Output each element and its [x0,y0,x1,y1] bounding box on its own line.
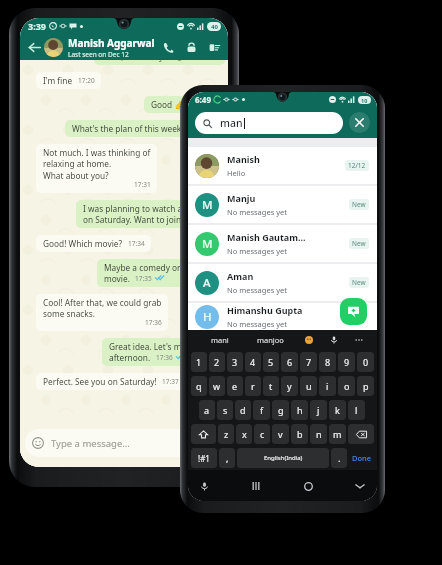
button[interactable]: 2 [209,352,225,372]
button[interactable]: Voice call [160,39,177,56]
staticText: Manju [227,192,256,204]
button[interactable]: More options [206,39,223,56]
button[interactable]: New chat [340,298,367,325]
button[interactable]: Done [350,448,373,468]
button[interactable]: w [209,376,225,396]
staticText: c [260,428,265,440]
staticText: f [260,404,264,416]
button[interactable]: Maybe a comedy or an action [97,259,225,287]
button[interactable]: Not much. I was thinking of relaxing at … [36,144,157,193]
button[interactable]: Shift [191,424,216,444]
button[interactable]: g [272,400,289,420]
button[interactable]: z [218,424,234,444]
button[interactable]: !#1 [191,448,217,468]
button[interactable]: mani [194,330,245,350]
staticText: g [278,404,284,416]
staticText: 17:26 [190,100,207,109]
staticText: No messages yet [227,319,287,329]
button[interactable]: 4 [245,352,261,372]
staticText: manjoo [257,335,284,345]
button[interactable]: y [281,376,298,396]
staticText: Hello [227,168,246,178]
button[interactable]: man [195,112,343,134]
button[interactable]: p [357,376,374,396]
button[interactable]: I was planning to watch a movie [76,200,225,228]
button[interactable]: 1 [191,352,207,372]
button[interactable]: v [272,424,289,444]
staticText: u [306,380,312,392]
button[interactable]: , [219,448,235,468]
button[interactable]: Home [300,478,316,494]
button[interactable]: s [217,400,233,420]
button[interactable]: 9 [338,352,355,372]
button[interactable]: 8 [319,352,336,372]
button[interactable]: u [300,376,317,396]
button[interactable]: e [227,376,243,396]
button[interactable]: Hello, how are you 😊 [94,60,225,65]
button[interactable]: I'm fine [36,72,101,89]
staticText: 17:28 [190,124,207,133]
staticText: man [220,116,243,130]
button[interactable]: Back [352,478,368,494]
staticText: s [223,404,228,416]
button[interactable]: Voice assistant [197,479,211,493]
staticText: . [338,452,341,464]
button[interactable]: r [245,376,261,396]
button[interactable]: Type a message... [25,429,223,457]
button[interactable]: b [291,424,308,444]
staticText: 0 [363,356,369,368]
button[interactable]: m [329,424,346,444]
button[interactable]: M [188,186,377,223]
button[interactable]: d [235,400,251,420]
staticText: New [352,278,366,287]
button[interactable]: l [348,400,365,420]
button[interactable]: Manish [188,147,377,184]
staticText: Last seen on Dec 12 [68,50,129,59]
button[interactable]: Cool! After that, we could grab some sna… [36,294,168,331]
button[interactable]: . [331,448,347,468]
button[interactable]: 0 [357,352,374,372]
staticText: r [251,380,255,392]
button[interactable]: k [329,400,346,420]
button[interactable]: English(India) [237,448,329,468]
button[interactable]: c [254,424,270,444]
button[interactable]: Recent apps [248,478,264,494]
staticText: 5 [268,356,274,368]
button[interactable]: 6 [281,352,298,372]
button[interactable]: t [263,376,279,396]
button[interactable]: n [310,424,327,444]
button[interactable]: Good 👍 [144,96,225,113]
button[interactable]: M [188,225,377,262]
button[interactable]: i [319,376,336,396]
button[interactable]: x [236,424,252,444]
button[interactable]: Encryption [183,39,200,56]
button[interactable]: Great idea. Let's meet in the [102,338,225,366]
staticText: Great idea. Let's meet in the [109,341,219,352]
button[interactable]: manjoo [245,330,296,350]
button[interactable]: 7 [300,352,317,372]
button[interactable]: What's the plan of this week? [65,120,225,137]
staticText: i [326,380,329,392]
button[interactable]: a [199,400,215,420]
button[interactable]: 5 [263,352,279,372]
button[interactable]: o [338,376,355,396]
button[interactable]: Perfect. See you on Saturday! [36,373,185,390]
button[interactable]: h [291,400,308,420]
staticText: 17:37 [162,377,179,386]
button[interactable]: Backspace [348,424,374,444]
staticText: movie. [104,273,130,284]
button[interactable]: j [310,400,327,420]
staticText: 17:20 [78,76,95,85]
button[interactable]: Profile photo [44,38,63,57]
button[interactable]: Back [25,38,43,56]
button[interactable]: H [188,303,377,330]
button[interactable]: f [253,400,270,420]
button[interactable]: Emoji [296,330,321,350]
button[interactable]: Good! Which movie? [36,235,151,252]
button[interactable]: More [346,330,371,350]
button[interactable]: q [191,376,207,396]
button[interactable]: Clear search [349,112,370,133]
button[interactable]: Voice typing [321,330,346,350]
button[interactable]: A [188,264,377,301]
button[interactable]: 3 [227,352,243,372]
